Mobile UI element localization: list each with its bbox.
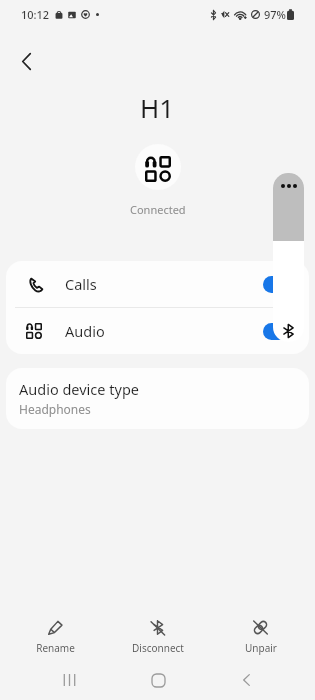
button[interactable]: Back (8, 43, 44, 79)
button[interactable]: Audio (6, 308, 309, 354)
button[interactable]: Disconnect (110, 615, 205, 659)
button[interactable]: Rename (8, 615, 103, 659)
staticText: Disconnect (132, 641, 184, 655)
button[interactable]: Calls (6, 261, 309, 307)
button[interactable]: Back (226, 662, 266, 698)
button[interactable]: Audio device type (6, 368, 309, 429)
staticText: Connected (130, 202, 186, 217)
staticText: Unpair (245, 641, 277, 655)
staticText: Calls (65, 274, 97, 294)
staticText: Headphones (19, 401, 91, 417)
button[interactable]: Home (138, 662, 178, 698)
staticText: 97% (264, 7, 286, 22)
staticText: 10:12 (21, 7, 50, 22)
staticText: Audio (65, 321, 105, 341)
button[interactable]: Recents (49, 662, 89, 698)
button[interactable]: Unpair (213, 615, 308, 659)
staticText: Audio device type (19, 379, 139, 399)
staticText: H1 (140, 90, 175, 125)
button[interactable]: Edge panel (273, 173, 304, 342)
staticText: Rename (36, 641, 75, 655)
